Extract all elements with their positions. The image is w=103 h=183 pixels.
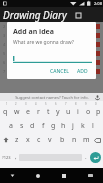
staticText: 9 [85, 102, 87, 105]
staticText: 7 [3, 69, 9, 74]
staticText: 5 [45, 102, 47, 105]
staticText: 2 [15, 102, 17, 105]
staticText: a [9, 121, 13, 131]
staticText: SHY [11, 60, 85, 66]
button[interactable]: h [58, 119, 68, 133]
button[interactable]: 7 [0, 67, 103, 76]
button[interactable]: , [12, 147, 19, 167]
staticText: 0 [95, 102, 97, 105]
staticText: j [72, 121, 74, 131]
button[interactable]: Hide keyboard [0, 168, 25, 183]
button[interactable]: v [44, 133, 56, 147]
button[interactable]: Recents [51, 168, 77, 183]
staticText: ?123 [2, 155, 11, 160]
staticText: v [48, 135, 52, 145]
button[interactable]: x [22, 133, 33, 147]
button[interactable]: d [27, 119, 38, 133]
button[interactable]: o [83, 105, 93, 119]
button[interactable]: ADD [74, 66, 91, 77]
button[interactable]: s [16, 119, 27, 133]
staticText: q [3, 107, 8, 117]
button[interactable]: ?123 [1, 147, 12, 167]
button[interactable]: 5 [0, 49, 103, 58]
staticText: b [60, 135, 65, 145]
button[interactable]: n [68, 133, 80, 147]
button[interactable]: e [22, 105, 33, 119]
staticText: h [61, 121, 66, 131]
button[interactable]: c [33, 133, 44, 147]
staticText: SOFT [11, 42, 85, 48]
staticText: 4 [3, 42, 9, 47]
button[interactable]: b [56, 133, 68, 147]
staticText: k [81, 121, 85, 131]
button[interactable]: 6 [0, 58, 103, 67]
button[interactable]: r [33, 105, 43, 119]
button[interactable]: g [48, 119, 58, 133]
staticText: WAVE [11, 33, 85, 39]
button[interactable]: t [43, 105, 53, 119]
staticText: g [51, 121, 56, 131]
button[interactable]: Shift [0, 133, 11, 147]
button[interactable]: Enter [90, 152, 101, 163]
button[interactable]: w [11, 105, 22, 119]
button[interactable]: y [53, 105, 63, 119]
staticText: i [77, 107, 79, 117]
button[interactable]: . [82, 147, 89, 167]
staticText: m [83, 135, 90, 145]
staticText: y [56, 107, 60, 117]
button[interactable]: Delete all [72, 9, 84, 21]
staticText: o [86, 107, 91, 117]
staticText: Drawing Diary [3, 8, 67, 22]
staticText: 1 [6, 102, 8, 105]
button[interactable]: CANCEL [47, 66, 72, 77]
staticText: x [26, 135, 30, 145]
button[interactable]: q [0, 105, 11, 119]
staticText: u [66, 107, 71, 117]
staticText: 2 [3, 24, 9, 29]
button[interactable]: k [78, 119, 88, 133]
staticText: , [15, 153, 17, 161]
staticText: 3 [3, 33, 9, 38]
button[interactable] [13, 55, 92, 63]
button[interactable]: u [63, 105, 73, 119]
button[interactable]: m [80, 133, 92, 147]
staticText: 8 [75, 102, 77, 105]
staticText: r [37, 107, 40, 117]
staticText: l [92, 121, 94, 131]
staticText: 3 [25, 102, 27, 105]
staticText: s [20, 121, 24, 131]
staticText: 5 [3, 51, 9, 56]
staticText: w [14, 107, 20, 117]
button[interactable]: j [68, 119, 78, 133]
staticText: d [30, 121, 35, 131]
staticText: 7 [65, 102, 67, 105]
staticText: TREE [11, 51, 85, 57]
button[interactable]: Switch keyboard [77, 168, 103, 183]
staticText: n [72, 135, 77, 145]
staticText: t [47, 107, 50, 117]
button[interactable]: Voice input [94, 94, 101, 101]
button[interactable]: a [5, 119, 16, 133]
staticText: What are we gonna draw? [13, 39, 75, 46]
button[interactable]: i [73, 105, 83, 119]
button[interactable]: 3 [0, 31, 103, 40]
staticText: c [37, 135, 41, 145]
staticText: Suggest contact names? Touch for info. [15, 95, 89, 100]
button[interactable]: Backspace [92, 133, 103, 147]
staticText: CANCEL [50, 68, 69, 75]
staticText: f [42, 121, 45, 131]
button[interactable]: f [38, 119, 48, 133]
button[interactable]: p [93, 105, 103, 119]
staticText: 2:08 [94, 1, 102, 6]
button[interactable]: z [11, 133, 22, 147]
button[interactable]: 4 [0, 40, 103, 49]
staticText: p [96, 107, 101, 117]
staticText: ADD [77, 68, 88, 75]
button[interactable]: l [88, 119, 98, 133]
staticText: z [15, 135, 19, 145]
staticText: e [26, 107, 30, 117]
staticText: . [85, 153, 87, 161]
button[interactable]: 2 [0, 22, 103, 31]
button[interactable]: Home [25, 168, 51, 183]
